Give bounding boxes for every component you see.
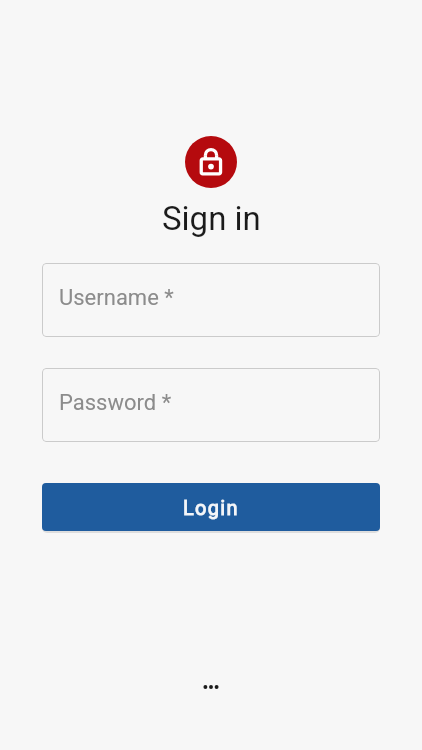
staticText: Sign in bbox=[162, 199, 261, 238]
staticText: Login bbox=[183, 496, 239, 519]
staticText: Password * bbox=[59, 390, 172, 416]
staticText: Username * bbox=[59, 285, 174, 311]
button[interactable]: Username * bbox=[42, 263, 380, 337]
button[interactable]: Login bbox=[42, 483, 380, 531]
other: Secure sign in bbox=[185, 136, 237, 188]
button[interactable]: Password * bbox=[42, 368, 380, 442]
button[interactable]: More options bbox=[191, 669, 231, 705]
